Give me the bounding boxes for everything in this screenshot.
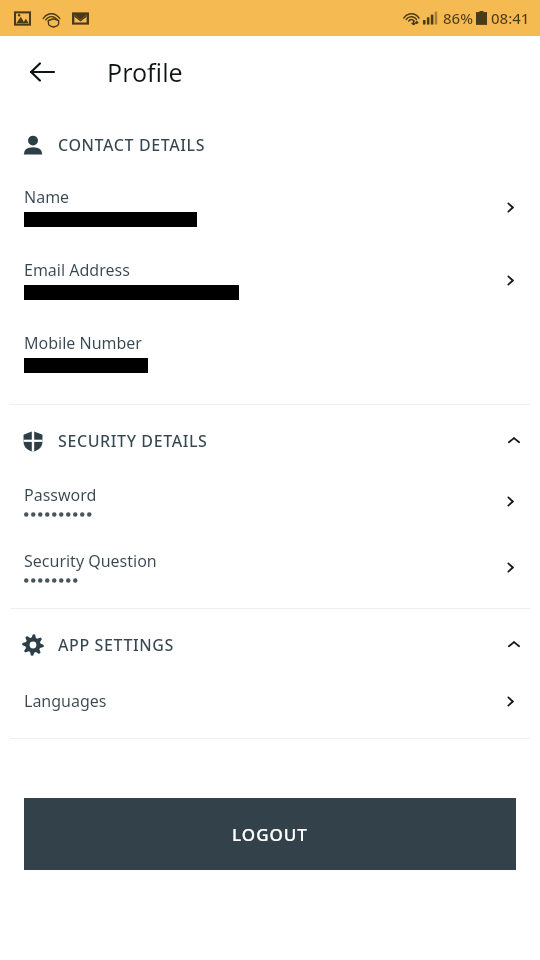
staticText: Mobile Number bbox=[24, 332, 142, 354]
staticText: APP SETTINGS bbox=[58, 634, 174, 656]
button[interactable]: Back bbox=[18, 48, 66, 96]
staticText: LOGOUT bbox=[232, 823, 308, 846]
staticText: 08:41 bbox=[491, 8, 530, 28]
staticText: Security Question bbox=[24, 550, 157, 572]
button[interactable]: Name bbox=[0, 186, 540, 227]
button[interactable]: LOGOUT bbox=[24, 798, 516, 870]
button[interactable]: Email Address bbox=[0, 259, 540, 300]
staticText: Password bbox=[24, 484, 97, 506]
staticText: Profile bbox=[107, 55, 183, 89]
button[interactable]: Password bbox=[0, 484, 540, 518]
staticText: Name bbox=[24, 186, 70, 208]
button[interactable]: SECURITY DETAILS bbox=[0, 424, 540, 458]
staticText: Email Address bbox=[24, 259, 130, 281]
button[interactable]: Mobile Number bbox=[0, 332, 540, 373]
staticText: 86% bbox=[443, 8, 473, 28]
button[interactable]: Languages bbox=[0, 684, 540, 718]
button[interactable]: APP SETTINGS bbox=[0, 628, 540, 662]
button[interactable]: CONTACT DETAILS bbox=[0, 128, 540, 162]
staticText: CONTACT DETAILS bbox=[58, 134, 206, 156]
staticText: SECURITY DETAILS bbox=[58, 430, 208, 452]
staticText: Languages bbox=[24, 690, 496, 712]
button[interactable]: Security Question bbox=[0, 550, 540, 584]
